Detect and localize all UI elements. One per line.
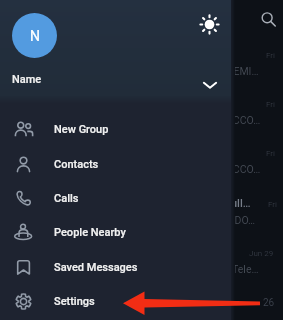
button[interactable]: Fri (0, 92, 283, 138)
staticText: ACCO… (226, 114, 261, 126)
staticText: People Nearby (54, 226, 126, 239)
button[interactable]: Calls (0, 181, 231, 215)
staticText: Tele… (232, 263, 259, 275)
button[interactable]: Settings (0, 284, 231, 318)
staticText: Fri (266, 100, 275, 109)
staticText: REMI… (227, 65, 259, 77)
button[interactable]: Jun 29 (0, 241, 283, 287)
staticText: Saved Messages (54, 261, 138, 274)
button[interactable]: Saved Messages (0, 250, 231, 284)
staticText: 3 DO… (226, 214, 256, 226)
button[interactable]: N (12, 13, 57, 58)
button[interactable]: Search (256, 7, 280, 31)
staticText: ACCO… (226, 163, 261, 175)
staticText: Settings (54, 295, 95, 308)
staticText: Contacts (54, 158, 99, 171)
staticText: Calls (54, 192, 79, 205)
staticText: Fri (266, 149, 275, 158)
button[interactable]: Expand accounts (197, 72, 223, 98)
button[interactable]: Fri (0, 192, 283, 238)
staticText: Fri (266, 51, 275, 60)
button[interactable]: Fri (0, 141, 283, 187)
button[interactable]: Toggle night mode (195, 10, 223, 38)
button[interactable]: Fri (0, 43, 283, 89)
staticText: N (30, 28, 40, 44)
button[interactable]: Contacts (0, 147, 231, 181)
staticText: Fri (268, 200, 277, 209)
button[interactable]: New Group (0, 112, 231, 146)
staticText: Jun 29 (249, 249, 274, 258)
button[interactable]: Name (12, 71, 42, 87)
staticText: ull… (231, 197, 251, 210)
staticText: New Group (54, 123, 109, 136)
button[interactable]: People Nearby (0, 215, 231, 249)
staticText: Name (12, 73, 42, 86)
staticText: 26 (263, 297, 275, 309)
